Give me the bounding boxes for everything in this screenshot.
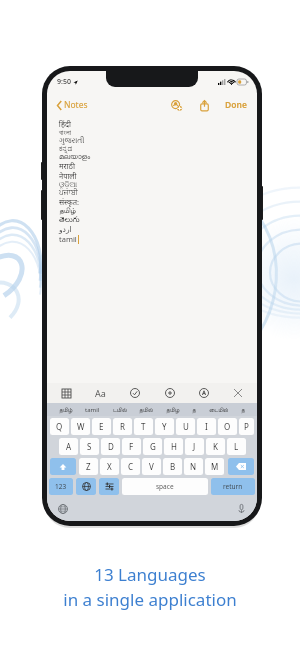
button[interactable]: U: [176, 418, 195, 435]
button[interactable]: Z: [79, 458, 98, 475]
button[interactable]: தமிழ: [165, 407, 181, 413]
staticText: 13 Languages: [94, 563, 206, 586]
staticText: return: [223, 482, 243, 491]
staticText: J: [193, 441, 196, 452]
staticText: X: [107, 461, 112, 472]
staticText: ಕನ್ನಡ: [59, 145, 73, 153]
staticText: తెలుగు: [59, 215, 80, 225]
staticText: Z: [86, 461, 91, 472]
button[interactable]: O: [218, 418, 237, 435]
staticText: C: [128, 461, 134, 472]
staticText: 123: [55, 482, 67, 491]
button[interactable]: த: [191, 407, 197, 413]
button[interactable]: X: [100, 458, 119, 475]
button[interactable]: Key: [50, 458, 76, 475]
staticText: E: [99, 421, 104, 432]
staticText: டமில்: [113, 407, 127, 413]
button[interactable]: N: [184, 458, 203, 475]
button[interactable]: Dictation: [233, 501, 249, 517]
button[interactable]: space: [122, 478, 208, 495]
staticText: ଓଡ଼ିଆ: [59, 181, 77, 189]
staticText: in a single application: [63, 588, 237, 611]
staticText: R: [120, 421, 125, 432]
staticText: டைமில்: [209, 407, 229, 413]
button[interactable]: Markup: [197, 386, 211, 400]
button[interactable]: C: [121, 458, 140, 475]
staticText: Notes: [64, 99, 88, 111]
button[interactable]: I: [197, 418, 216, 435]
button[interactable]: K: [206, 438, 225, 455]
staticText: த: [192, 407, 196, 413]
button[interactable]: A: [59, 438, 78, 455]
button[interactable]: H: [164, 438, 183, 455]
button[interactable]: T: [134, 418, 153, 435]
staticText: हिंदी: [59, 119, 71, 129]
button[interactable]: P: [239, 418, 254, 435]
button[interactable]: டமில்: [112, 407, 128, 413]
staticText: I: [205, 421, 208, 432]
button[interactable]: Add people: [167, 96, 185, 114]
button[interactable]: தமிழ்: [58, 407, 74, 413]
staticText: Done: [225, 99, 247, 111]
staticText: W: [77, 421, 85, 432]
button[interactable]: தமில்: [138, 407, 154, 413]
staticText: tamil: [59, 234, 77, 244]
staticText: P: [244, 421, 249, 432]
staticText: T: [141, 421, 146, 432]
staticText: D: [108, 441, 114, 452]
button[interactable]: டைமில்: [208, 407, 230, 413]
staticText: ਪੰਜਾਬੀ: [59, 189, 78, 197]
staticText: space: [156, 482, 174, 491]
staticText: தமிழ்: [59, 407, 73, 413]
staticText: தமிழ: [166, 407, 180, 413]
staticText: Q: [56, 421, 63, 432]
button[interactable]: Done: [223, 96, 249, 114]
button[interactable]: Table: [59, 386, 73, 400]
button[interactable]: E: [92, 418, 111, 435]
staticText: K: [213, 441, 218, 452]
staticText: தமிழ்: [59, 207, 76, 215]
button[interactable]: Keyboard settings: [99, 478, 119, 495]
button[interactable]: M: [205, 458, 224, 475]
staticText: H: [171, 441, 177, 452]
staticText: B: [170, 461, 176, 472]
button[interactable]: S: [80, 438, 99, 455]
button[interactable]: த: [240, 407, 246, 413]
button[interactable]: tamil: [84, 406, 101, 414]
button[interactable]: 123: [49, 478, 73, 495]
button[interactable]: B: [163, 458, 182, 475]
button[interactable]: R: [113, 418, 132, 435]
button[interactable]: V: [142, 458, 161, 475]
button[interactable]: return: [211, 478, 255, 495]
button[interactable]: Key: [228, 458, 254, 475]
staticText: O: [224, 421, 231, 432]
button[interactable]: J: [185, 438, 204, 455]
staticText: Aa: [95, 387, 106, 399]
staticText: L: [234, 441, 239, 452]
button[interactable]: F: [122, 438, 141, 455]
button[interactable]: L: [227, 438, 246, 455]
button[interactable]: D: [101, 438, 120, 455]
staticText: A: [66, 441, 72, 452]
button[interactable]: Q: [50, 418, 69, 435]
button[interactable]: Switch keyboard: [76, 478, 96, 495]
staticText: संस्कृत:: [59, 197, 80, 207]
staticText: த: [241, 407, 245, 413]
button[interactable]: Checklist: [128, 386, 142, 400]
button[interactable]: Y: [155, 418, 174, 435]
button[interactable]: Share: [195, 96, 213, 114]
button[interactable]: Notes: [55, 96, 90, 114]
button[interactable]: Add attachment: [163, 386, 177, 400]
staticText: S: [87, 441, 92, 452]
staticText: ગુજરાતી: [59, 137, 85, 145]
staticText: F: [129, 441, 134, 452]
staticText: मराठी: [59, 161, 75, 171]
staticText: U: [183, 421, 189, 432]
button[interactable]: Emoji keyboard: [55, 501, 71, 517]
staticText: G: [150, 441, 156, 452]
button[interactable]: Aa: [93, 385, 108, 401]
staticText: മലയാളം: [59, 153, 91, 161]
button[interactable]: W: [71, 418, 90, 435]
button[interactable]: Close keyboard: [231, 386, 245, 400]
button[interactable]: G: [143, 438, 162, 455]
